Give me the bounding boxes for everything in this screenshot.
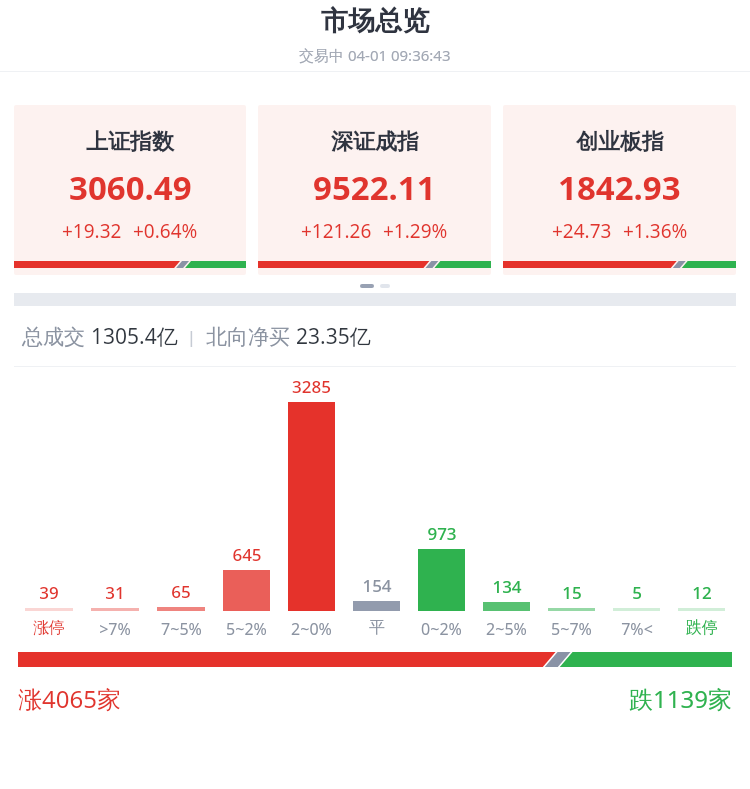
staticText: 15 — [562, 581, 582, 604]
staticText: 9522.11 — [313, 165, 436, 210]
staticText: +24.73 — [552, 218, 612, 244]
staticText: +121.26 — [301, 218, 372, 244]
button[interactable]: 31 — [82, 375, 148, 611]
button[interactable]: 总成交 — [0, 306, 750, 366]
staticText: 涨停 — [33, 618, 65, 638]
staticText: 31 — [105, 581, 125, 604]
button[interactable]: 创业板指 — [503, 105, 736, 275]
staticText: >7% — [99, 618, 131, 640]
button[interactable]: 154 — [344, 375, 409, 611]
staticText: 65 — [171, 580, 191, 603]
staticText: 跌停 — [686, 618, 718, 638]
staticText: 12 — [692, 581, 712, 604]
staticText: 973 — [427, 522, 457, 545]
staticText: +0.64% — [133, 218, 198, 244]
staticText: +1.29% — [383, 218, 448, 244]
staticText: 3285 — [292, 375, 331, 398]
button[interactable]: 973 — [409, 375, 474, 611]
button[interactable]: 645 — [214, 375, 279, 611]
button[interactable]: 12 — [669, 375, 734, 611]
staticText: 5~7% — [551, 618, 592, 640]
staticText: 5 — [632, 581, 642, 604]
staticText: 2~5% — [486, 618, 527, 640]
staticText: 154 — [362, 574, 392, 597]
staticText: 平 — [369, 618, 385, 638]
staticText: 市场总览 — [321, 4, 429, 38]
staticText: 上证指数 — [86, 128, 174, 156]
staticText: 39 — [39, 581, 59, 604]
staticText: 645 — [232, 543, 262, 566]
staticText: 1305.4亿 — [91, 322, 178, 351]
button[interactable]: 15 — [539, 375, 604, 611]
staticText: 7~5% — [161, 618, 202, 640]
button[interactable]: 39 — [16, 375, 82, 611]
staticText: | — [178, 325, 206, 348]
staticText: +1.36% — [623, 218, 688, 244]
staticText: 北向净买 — [206, 322, 296, 351]
button[interactable]: 3285 — [279, 375, 344, 611]
staticText: 涨4065家 — [18, 682, 121, 715]
staticText: 跌1139家 — [629, 682, 732, 715]
button[interactable]: 65 — [148, 375, 214, 611]
staticText: 134 — [492, 575, 522, 598]
button[interactable]: 深证成指 — [258, 105, 491, 275]
staticText: 交易中 04-01 09:36:43 — [299, 45, 451, 65]
staticText: 3060.49 — [69, 165, 192, 210]
button[interactable]: 5 — [604, 375, 669, 611]
staticText: 5~2% — [226, 618, 267, 640]
staticText: 0~2% — [421, 618, 462, 640]
staticText: 总成交 — [22, 322, 91, 351]
button[interactable]: 134 — [474, 375, 539, 611]
staticText: 2~0% — [291, 618, 332, 640]
staticText: 23.35亿 — [296, 322, 371, 351]
staticText: 1842.93 — [558, 165, 681, 210]
staticText: 7%< — [621, 618, 653, 640]
staticText: 创业板指 — [576, 128, 664, 156]
button[interactable]: 上证指数 — [14, 105, 246, 275]
staticText: +19.32 — [62, 218, 122, 244]
staticText: 深证成指 — [331, 128, 419, 156]
